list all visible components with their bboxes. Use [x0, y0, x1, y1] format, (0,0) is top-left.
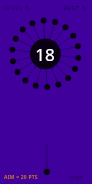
staticText: AIM = 20 PTS — [4, 174, 38, 181]
staticText: LEVEL 3 — [3, 4, 29, 12]
staticText: QUIT — [69, 174, 83, 181]
staticText: 18 — [35, 43, 55, 66]
button[interactable]: BEST 3 — [63, 4, 86, 12]
button[interactable]: QUIT — [69, 174, 83, 181]
button[interactable]: LEVEL 3 — [3, 4, 29, 12]
staticText: BEST 3 — [63, 4, 86, 12]
